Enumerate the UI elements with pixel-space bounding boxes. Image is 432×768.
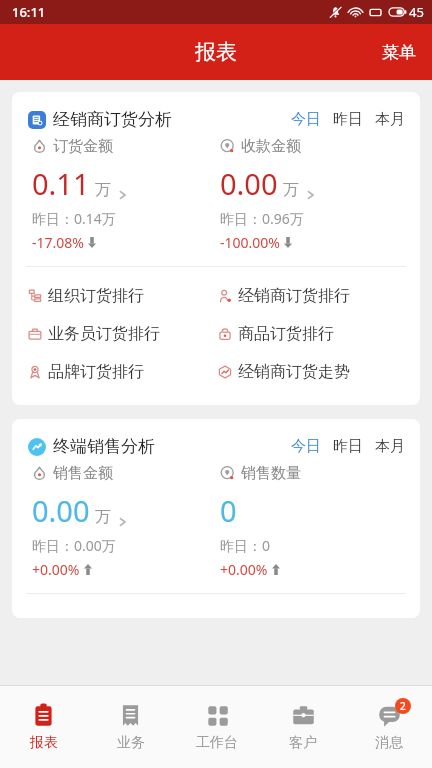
staticText: 商品订货排行: [238, 324, 334, 344]
button[interactable]: 菜单: [366, 28, 432, 77]
staticText: 订货金额: [53, 137, 113, 156]
button[interactable]: 报表: [0, 686, 87, 768]
button[interactable]: 今日: [290, 106, 322, 133]
staticText: 0: [220, 491, 237, 530]
button[interactable]: 工作台: [174, 686, 260, 768]
button[interactable]: 2: [346, 686, 432, 768]
staticText: 菜单: [382, 42, 416, 63]
button[interactable]: 今日: [290, 433, 322, 460]
staticText: 今日: [291, 437, 321, 456]
staticText: -100.00%: [220, 233, 280, 252]
button[interactable]: 收款金额: [220, 137, 408, 252]
button[interactable]: 昨日: [332, 433, 364, 460]
staticText: 本月: [375, 437, 405, 456]
staticText: 销售数量: [241, 464, 301, 483]
button[interactable]: 业务: [87, 686, 174, 768]
staticText: 品牌订货排行: [48, 362, 144, 382]
staticText: 0.00: [220, 164, 278, 203]
staticText: 消息: [375, 734, 403, 752]
staticText: 0.00: [32, 491, 90, 530]
button[interactable]: 经销商订货排行: [218, 277, 408, 315]
staticText: 经销商订货排行: [238, 286, 350, 306]
button[interactable]: 品牌订货排行: [28, 353, 218, 391]
button[interactable]: 业务员订货排行: [28, 315, 218, 353]
staticText: 2: [400, 699, 406, 713]
staticText: -17.08%: [32, 233, 84, 252]
button[interactable]: 组织订货排行: [28, 277, 218, 315]
staticText: 业务员订货排行: [48, 324, 160, 344]
staticText: 销售金额: [53, 464, 113, 483]
staticText: 经销商订货分析: [53, 109, 172, 130]
staticText: +0.00%: [220, 560, 268, 579]
staticText: 业务: [117, 734, 145, 752]
staticText: 工作台: [196, 734, 238, 752]
button[interactable]: 客户: [260, 686, 346, 768]
staticText: 昨日：0.96万: [220, 209, 304, 228]
staticText: 万: [95, 180, 111, 200]
button[interactable]: 经销商订货走势: [218, 353, 408, 391]
staticText: 万: [95, 507, 111, 527]
button[interactable]: 销售数量: [220, 464, 408, 579]
staticText: 终端销售分析: [53, 436, 155, 457]
button[interactable]: 销售金额: [32, 464, 220, 579]
staticText: 报表: [195, 39, 237, 65]
staticText: 昨日：0.14万: [32, 209, 116, 228]
staticText: 0.11: [32, 164, 90, 203]
staticText: 昨日：0: [220, 536, 271, 555]
staticText: 客户: [289, 734, 317, 752]
button[interactable]: 订货金额: [32, 137, 220, 252]
staticText: 报表: [30, 734, 58, 752]
button[interactable]: 商品订货排行: [218, 315, 408, 353]
staticText: 16:11: [12, 3, 46, 21]
staticText: +0.00%: [32, 560, 80, 579]
staticText: 组织订货排行: [48, 286, 144, 306]
staticText: 昨日: [333, 110, 363, 129]
button[interactable]: 本月: [374, 433, 406, 460]
staticText: 昨日：0.00万: [32, 536, 116, 555]
staticText: 经销商订货走势: [238, 362, 350, 382]
staticText: 昨日: [333, 437, 363, 456]
staticText: 收款金额: [241, 137, 301, 156]
button[interactable]: 本月: [374, 106, 406, 133]
staticText: 本月: [375, 110, 405, 129]
button[interactable]: 昨日: [332, 106, 364, 133]
staticText: 万: [283, 180, 299, 200]
staticText: 45: [409, 3, 424, 21]
staticText: 今日: [291, 110, 321, 129]
